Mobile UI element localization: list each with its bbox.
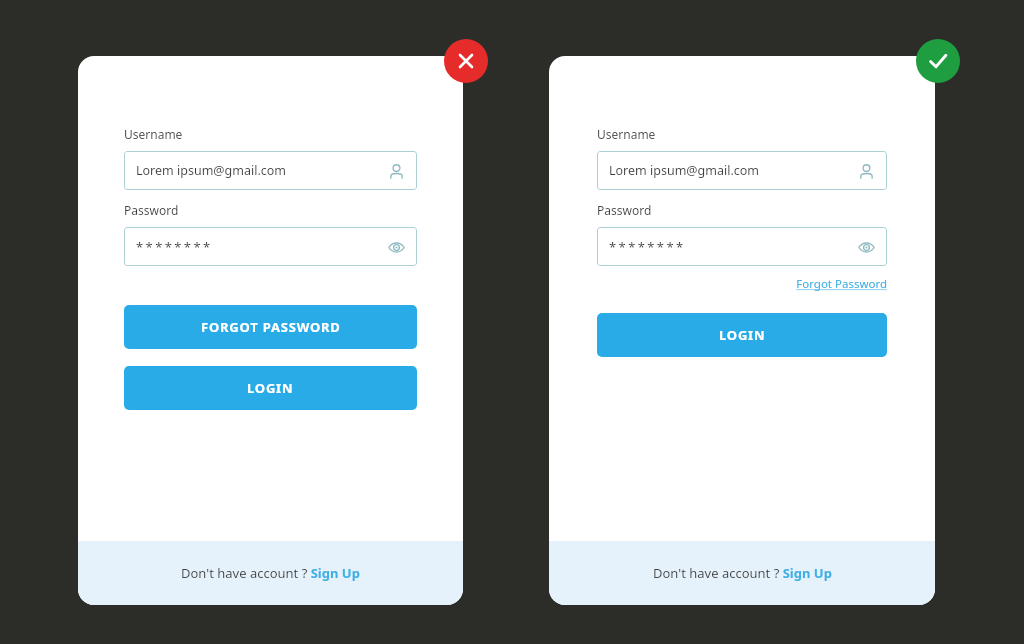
- button[interactable]: Don't have account ? Sign Up: [645, 558, 840, 588]
- staticText: Username: [597, 126, 656, 142]
- staticText: Password: [597, 202, 652, 218]
- button[interactable]: Lorem ipsum@gmail.com: [597, 151, 887, 190]
- button[interactable]: Error: [444, 39, 488, 83]
- staticText: FORGOT PASSWORD: [201, 318, 341, 336]
- staticText: ********: [136, 238, 386, 256]
- button[interactable]: Account: [386, 161, 406, 181]
- staticText: LOGIN: [247, 379, 294, 397]
- staticText: ********: [609, 238, 856, 256]
- button[interactable]: FORGOT PASSWORD: [124, 305, 417, 349]
- staticText: Forgot Password: [796, 276, 887, 292]
- staticText: Lorem ipsum@gmail.com: [136, 162, 386, 179]
- staticText: Username: [124, 126, 183, 142]
- button[interactable]: Show password: [856, 237, 876, 257]
- button[interactable]: Success: [916, 39, 960, 83]
- staticText: Lorem ipsum@gmail.com: [609, 162, 856, 179]
- button[interactable]: Forgot Password: [796, 276, 887, 292]
- staticText: LOGIN: [719, 326, 766, 344]
- staticText: Don't have account ? Sign Up: [653, 564, 832, 582]
- button[interactable]: ********: [597, 227, 887, 266]
- staticText: Password: [124, 202, 179, 218]
- staticText: Don't have account ? Sign Up: [181, 564, 360, 582]
- button[interactable]: Show password: [386, 237, 406, 257]
- button[interactable]: Lorem ipsum@gmail.com: [124, 151, 417, 190]
- button[interactable]: Don't have account ? Sign Up: [173, 558, 368, 588]
- button[interactable]: LOGIN: [597, 313, 887, 357]
- button[interactable]: LOGIN: [124, 366, 417, 410]
- button[interactable]: Account: [856, 161, 876, 181]
- button[interactable]: ********: [124, 227, 417, 266]
